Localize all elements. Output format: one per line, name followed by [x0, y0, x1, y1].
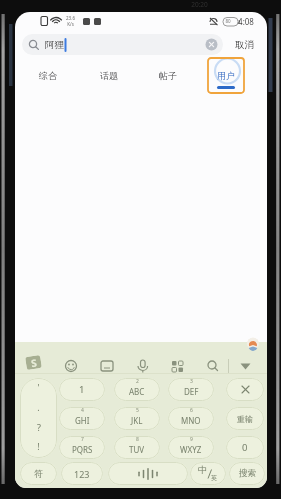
- staticText: 123: [74, 468, 90, 480]
- staticText: 英: [211, 474, 217, 482]
- staticText: 2: [136, 378, 139, 385]
- button[interactable]: 帖子: [148, 64, 188, 86]
- staticText: 3: [190, 378, 193, 385]
- button[interactable]: 9: [168, 436, 214, 459]
- staticText: 5: [136, 407, 139, 414]
- staticText: GHI: [75, 415, 90, 426]
- button[interactable]: 7: [59, 436, 105, 459]
- button[interactable]: [22, 34, 223, 55]
- button[interactable]: 取消: [227, 34, 261, 55]
- staticText: 重输: [237, 414, 253, 424]
- button[interactable]: 4: [59, 407, 105, 430]
- button[interactable]: 中: [190, 462, 226, 485]
- staticText: 0: [242, 441, 248, 454]
- staticText: 23.6: [66, 15, 75, 21]
- staticText: 取消: [235, 39, 254, 51]
- button[interactable]: 0: [226, 436, 264, 459]
- staticText: ': [37, 381, 40, 393]
- staticText: 4:08: [238, 16, 254, 27]
- button[interactable]: 123: [61, 462, 103, 485]
- button[interactable]: 搜索: [229, 462, 265, 485]
- staticText: JKL: [131, 415, 143, 426]
- button[interactable]: 符: [20, 462, 57, 485]
- button[interactable]: 1: [59, 378, 105, 401]
- staticText: 7: [81, 436, 84, 443]
- staticText: 综合: [39, 70, 57, 81]
- staticText: 9: [190, 436, 193, 443]
- button[interactable]: [246, 337, 260, 351]
- button[interactable]: 2: [114, 378, 160, 401]
- button[interactable]: 6: [168, 407, 214, 430]
- staticText: WXYZ: [180, 444, 202, 455]
- staticText: 符: [34, 468, 43, 479]
- staticText: 中: [198, 464, 207, 475]
- staticText: K/s: [67, 21, 74, 27]
- staticText: ABC: [129, 386, 145, 397]
- staticText: 20:20: [191, 0, 208, 9]
- button[interactable]: [20, 378, 57, 458]
- staticText: PQRS: [72, 444, 93, 455]
- button[interactable]: 重输: [226, 407, 264, 430]
- button[interactable]: 综合: [28, 64, 68, 86]
- staticText: S: [30, 355, 38, 369]
- staticText: MNO: [181, 415, 201, 426]
- staticText: 80: [225, 18, 231, 24]
- button[interactable]: 用户: [206, 64, 246, 86]
- button[interactable]: 8: [114, 436, 160, 459]
- staticText: 4: [81, 407, 84, 414]
- staticText: 1: [79, 383, 85, 396]
- button[interactable]: [23, 358, 259, 375]
- staticText: 帖子: [159, 70, 177, 81]
- staticText: 阿狸: [45, 39, 64, 51]
- staticText: 8: [136, 436, 139, 443]
- staticText: DEF: [184, 386, 199, 397]
- staticText: TUV: [129, 444, 145, 455]
- staticText: 话题: [100, 70, 118, 81]
- button[interactable]: [108, 462, 188, 485]
- staticText: 搜索: [239, 468, 256, 479]
- staticText: !: [37, 440, 40, 452]
- button[interactable]: 3: [168, 378, 214, 401]
- staticText: ?: [37, 421, 41, 433]
- button[interactable]: [205, 38, 218, 51]
- staticText: .: [37, 401, 40, 413]
- staticText: 6: [190, 407, 193, 414]
- staticText: 用户: [217, 70, 235, 81]
- button[interactable]: 话题: [89, 64, 129, 86]
- button[interactable]: [226, 378, 264, 401]
- button[interactable]: S: [25, 355, 42, 370]
- button[interactable]: 5: [114, 407, 160, 430]
